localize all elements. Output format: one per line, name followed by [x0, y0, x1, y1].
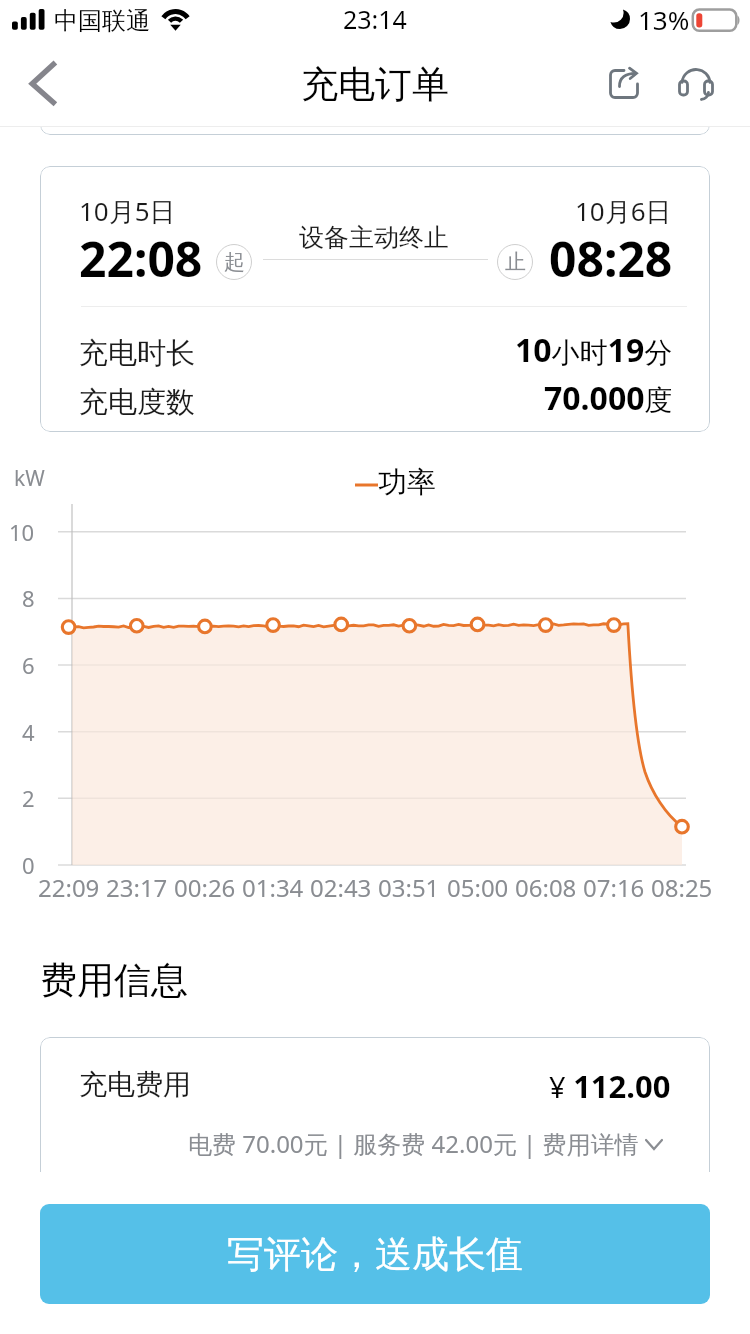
- staticText: 充电时长: [79, 335, 195, 372]
- staticText: 6: [22, 650, 35, 680]
- staticText: 03:51: [378, 871, 440, 904]
- staticText: 电费 70.00元 | 服务费 42.00元 | 费用详情: [188, 1127, 639, 1160]
- button[interactable]: Back: [0, 41, 86, 127]
- staticText: 0: [22, 850, 35, 880]
- staticText: 止: [505, 249, 526, 275]
- staticText: 22:09: [38, 871, 100, 904]
- button[interactable]: 充电费用: [40, 1037, 710, 1172]
- button[interactable]: 写评论，送成长值: [40, 1204, 710, 1304]
- staticText: 10月5日: [79, 193, 176, 229]
- staticText: 充电订单: [301, 61, 449, 108]
- staticText: 06:08: [515, 871, 577, 904]
- staticText: 05:00: [447, 871, 509, 904]
- staticText: 08:25: [651, 871, 713, 904]
- staticText: 中国联通: [54, 6, 150, 36]
- staticText: 22:08: [79, 226, 203, 291]
- staticText: 充电费用: [79, 1067, 191, 1102]
- staticText: 4: [22, 717, 35, 747]
- staticText: 13%: [638, 2, 690, 37]
- staticText: ¥ 112.00: [549, 1065, 671, 1107]
- staticText: 充电度数: [79, 384, 195, 421]
- button[interactable]: Share: [588, 41, 660, 127]
- staticText: 2: [22, 783, 35, 813]
- button[interactable]: Customer service: [660, 41, 732, 127]
- staticText: 功率: [378, 464, 436, 501]
- staticText: 10小时19分: [515, 328, 673, 372]
- staticText: 8: [22, 583, 35, 613]
- staticText: 起: [224, 249, 245, 275]
- staticText: 01:34: [242, 871, 304, 904]
- staticText: 写评论，送成长值: [227, 1231, 523, 1278]
- staticText: 费用信息: [40, 957, 188, 1004]
- staticText: 02:43: [310, 871, 372, 904]
- staticText: 23:14: [343, 2, 407, 36]
- staticText: 08:28: [549, 226, 673, 291]
- staticText: 10月6日: [575, 193, 672, 229]
- staticText: 设备主动终止: [299, 222, 449, 253]
- staticText: 70.000度: [544, 376, 673, 420]
- staticText: 07:16: [583, 871, 645, 904]
- staticText: 00:26: [174, 871, 236, 904]
- staticText: 23:17: [106, 871, 168, 904]
- staticText: kW: [14, 464, 45, 493]
- staticText: 10: [9, 517, 35, 547]
